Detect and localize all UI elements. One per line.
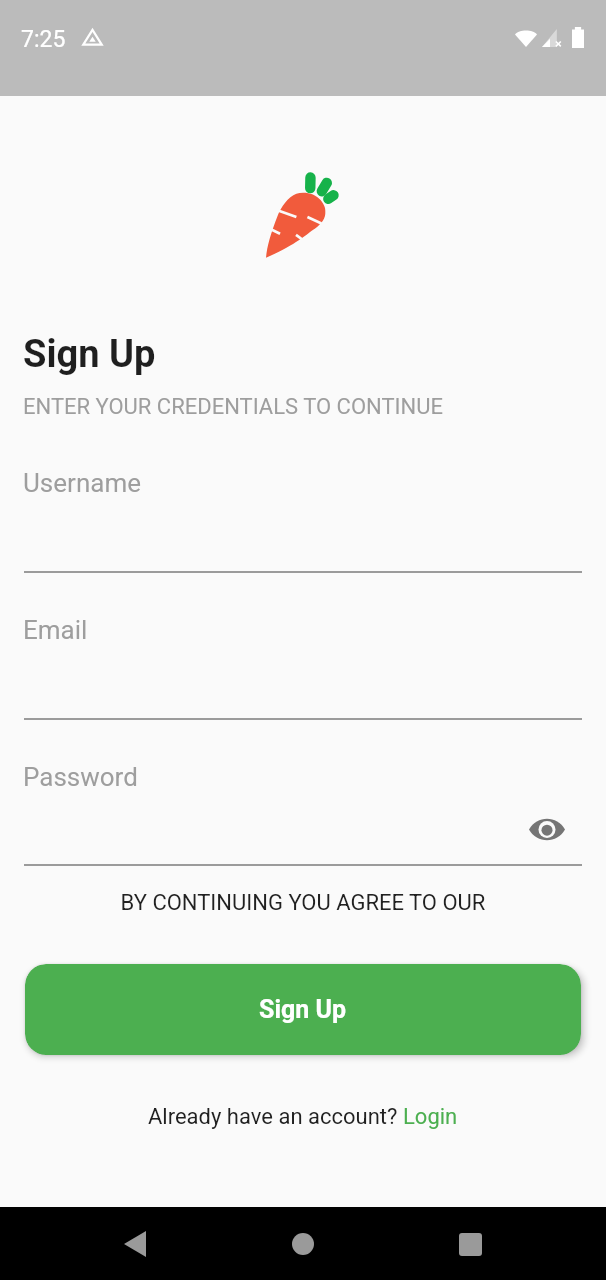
button[interactable]: Home [277, 1218, 329, 1270]
staticText: ENTER YOUR CREDENTIALS TO CONTINUE [23, 394, 443, 420]
staticText: Email [23, 615, 88, 645]
button[interactable]: Login [403, 1104, 458, 1130]
staticText: Sign Up [23, 332, 156, 377]
staticText: 7:25 [21, 26, 66, 53]
staticText: Sign Up [259, 995, 347, 1024]
staticText: Already have an account? [148, 1104, 403, 1130]
staticText: BY CONTINUING YOU AGREE TO OUR [0, 890, 606, 916]
button[interactable]: Sign Up [25, 964, 581, 1055]
button[interactable]: Show password [524, 807, 569, 852]
button[interactable]: Recent apps [444, 1218, 496, 1270]
staticText: Password [23, 762, 138, 792]
button[interactable]: Back [109, 1218, 161, 1270]
staticText: Username [23, 468, 141, 498]
